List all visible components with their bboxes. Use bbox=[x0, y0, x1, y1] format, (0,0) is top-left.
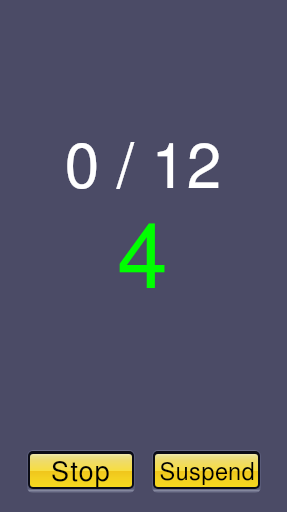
button[interactable]: Stop bbox=[28, 451, 134, 489]
staticText: Stop bbox=[30, 459, 132, 487]
staticText: 0 / 12 bbox=[0, 138, 287, 512]
button[interactable]: Suspend bbox=[153, 451, 260, 489]
staticText: 4 bbox=[0, 216, 286, 512]
staticText: Suspend bbox=[156, 461, 258, 487]
